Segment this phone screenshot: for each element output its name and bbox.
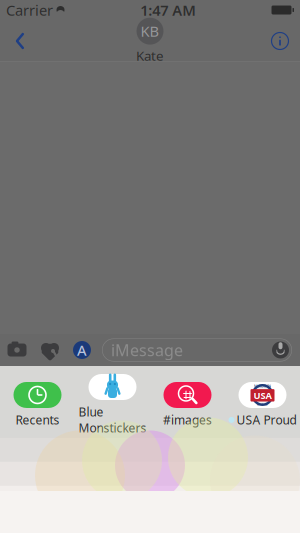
staticText: USA: [253, 389, 271, 402]
staticText: A: [77, 340, 87, 360]
staticText: Carrier: [6, 0, 53, 20]
button[interactable]: Recents: [0, 380, 75, 430]
staticText: 1:47 AM: [140, 0, 196, 20]
button[interactable]: Blue Monstickers: [75, 372, 150, 438]
staticText: USA Proud: [236, 412, 296, 428]
button[interactable]: Digital Touch: [34, 335, 66, 365]
button[interactable]: #images: [150, 380, 225, 430]
button[interactable]: Details: [260, 20, 300, 62]
staticText: #images: [163, 412, 212, 428]
button[interactable]: iMessage Apps: [66, 335, 98, 365]
button[interactable]: iMessage: [102, 338, 292, 361]
button[interactable]: Camera: [0, 335, 34, 365]
button[interactable]: MADE IN: [225, 380, 300, 430]
staticText: iMessage: [111, 339, 183, 361]
staticText: Recents: [15, 412, 59, 428]
button[interactable]: Back: [0, 20, 40, 62]
staticText: ★★★: [256, 402, 268, 407]
staticText: KB: [140, 21, 159, 41]
staticText: Blue Monstickers: [78, 404, 146, 436]
staticText: Kate: [136, 47, 164, 64]
staticText: MADE IN: [254, 383, 271, 389]
